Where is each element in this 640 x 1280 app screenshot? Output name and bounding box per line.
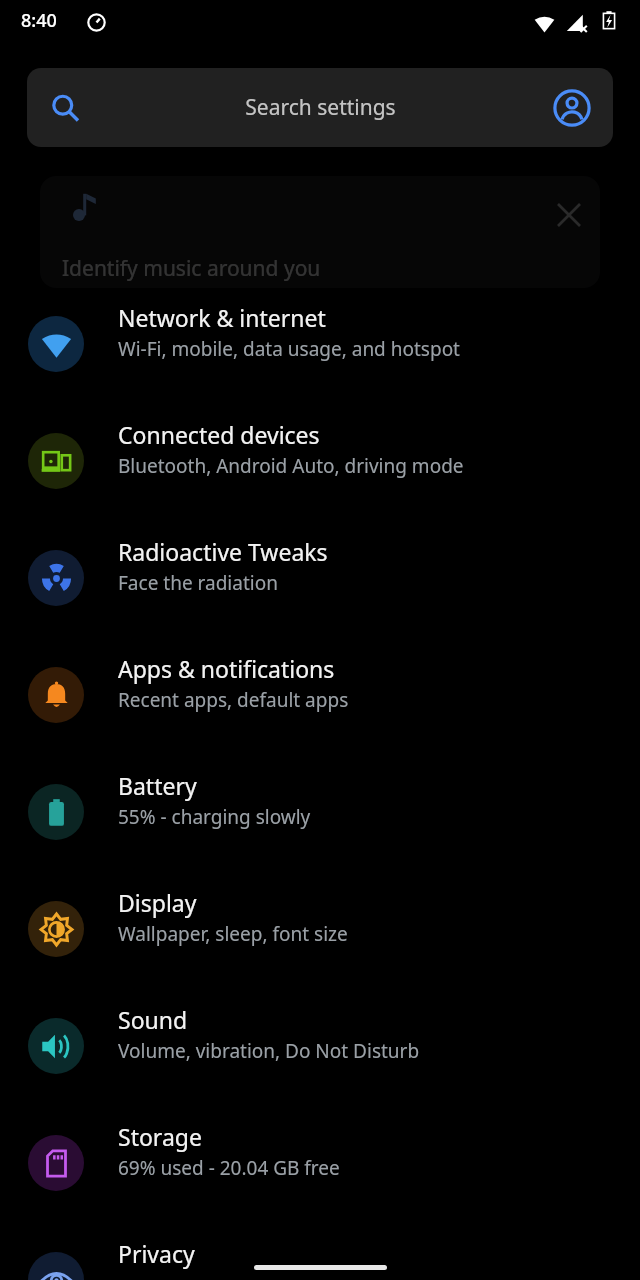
button[interactable]: Battery xyxy=(0,768,640,880)
staticText: Identify music around you xyxy=(62,254,321,283)
staticText: Recent apps, default apps xyxy=(118,687,349,713)
staticText: Network & internet xyxy=(118,302,326,333)
staticText: 8:40 xyxy=(21,8,57,33)
other: Account xyxy=(553,89,591,127)
staticText: 69% used - 20.04 GB free xyxy=(118,1155,340,1181)
staticText: Storage xyxy=(118,1121,202,1152)
button[interactable]: Network & internet xyxy=(0,300,640,412)
staticText: Radioactive Tweaks xyxy=(118,536,328,567)
button[interactable]: Apps & notifications xyxy=(0,651,640,763)
staticText: Sound xyxy=(118,1004,188,1035)
other: Search xyxy=(51,94,79,122)
button[interactable]: Search xyxy=(27,68,613,147)
staticText: 55% - charging slowly xyxy=(118,804,311,830)
staticText: Bluetooth, Android Auto, driving mode xyxy=(118,453,464,479)
button[interactable]: Radioactive Tweaks xyxy=(0,534,640,646)
staticText: Volume, vibration, Do Not Disturb xyxy=(118,1038,420,1064)
staticText: Connected devices xyxy=(118,419,320,450)
staticText: Wallpaper, sleep, font size xyxy=(118,921,348,947)
button[interactable]: Identify music around you xyxy=(40,176,600,288)
staticText: Face the radiation xyxy=(118,570,278,596)
button[interactable]: Storage xyxy=(0,1119,640,1231)
button[interactable]: Privacy xyxy=(0,1236,640,1280)
staticText: Search settings xyxy=(245,93,396,122)
button[interactable]: Sound xyxy=(0,1002,640,1114)
staticText: Apps & notifications xyxy=(118,653,335,684)
button[interactable]: Connected devices xyxy=(0,417,640,529)
other: Dismiss xyxy=(558,204,580,226)
button[interactable]: Display xyxy=(0,885,640,997)
staticText: Battery xyxy=(118,770,197,801)
staticText: Display xyxy=(118,887,197,918)
staticText: Wi-Fi, mobile, data usage, and hotspot xyxy=(118,336,460,362)
staticText: Privacy xyxy=(118,1238,195,1269)
